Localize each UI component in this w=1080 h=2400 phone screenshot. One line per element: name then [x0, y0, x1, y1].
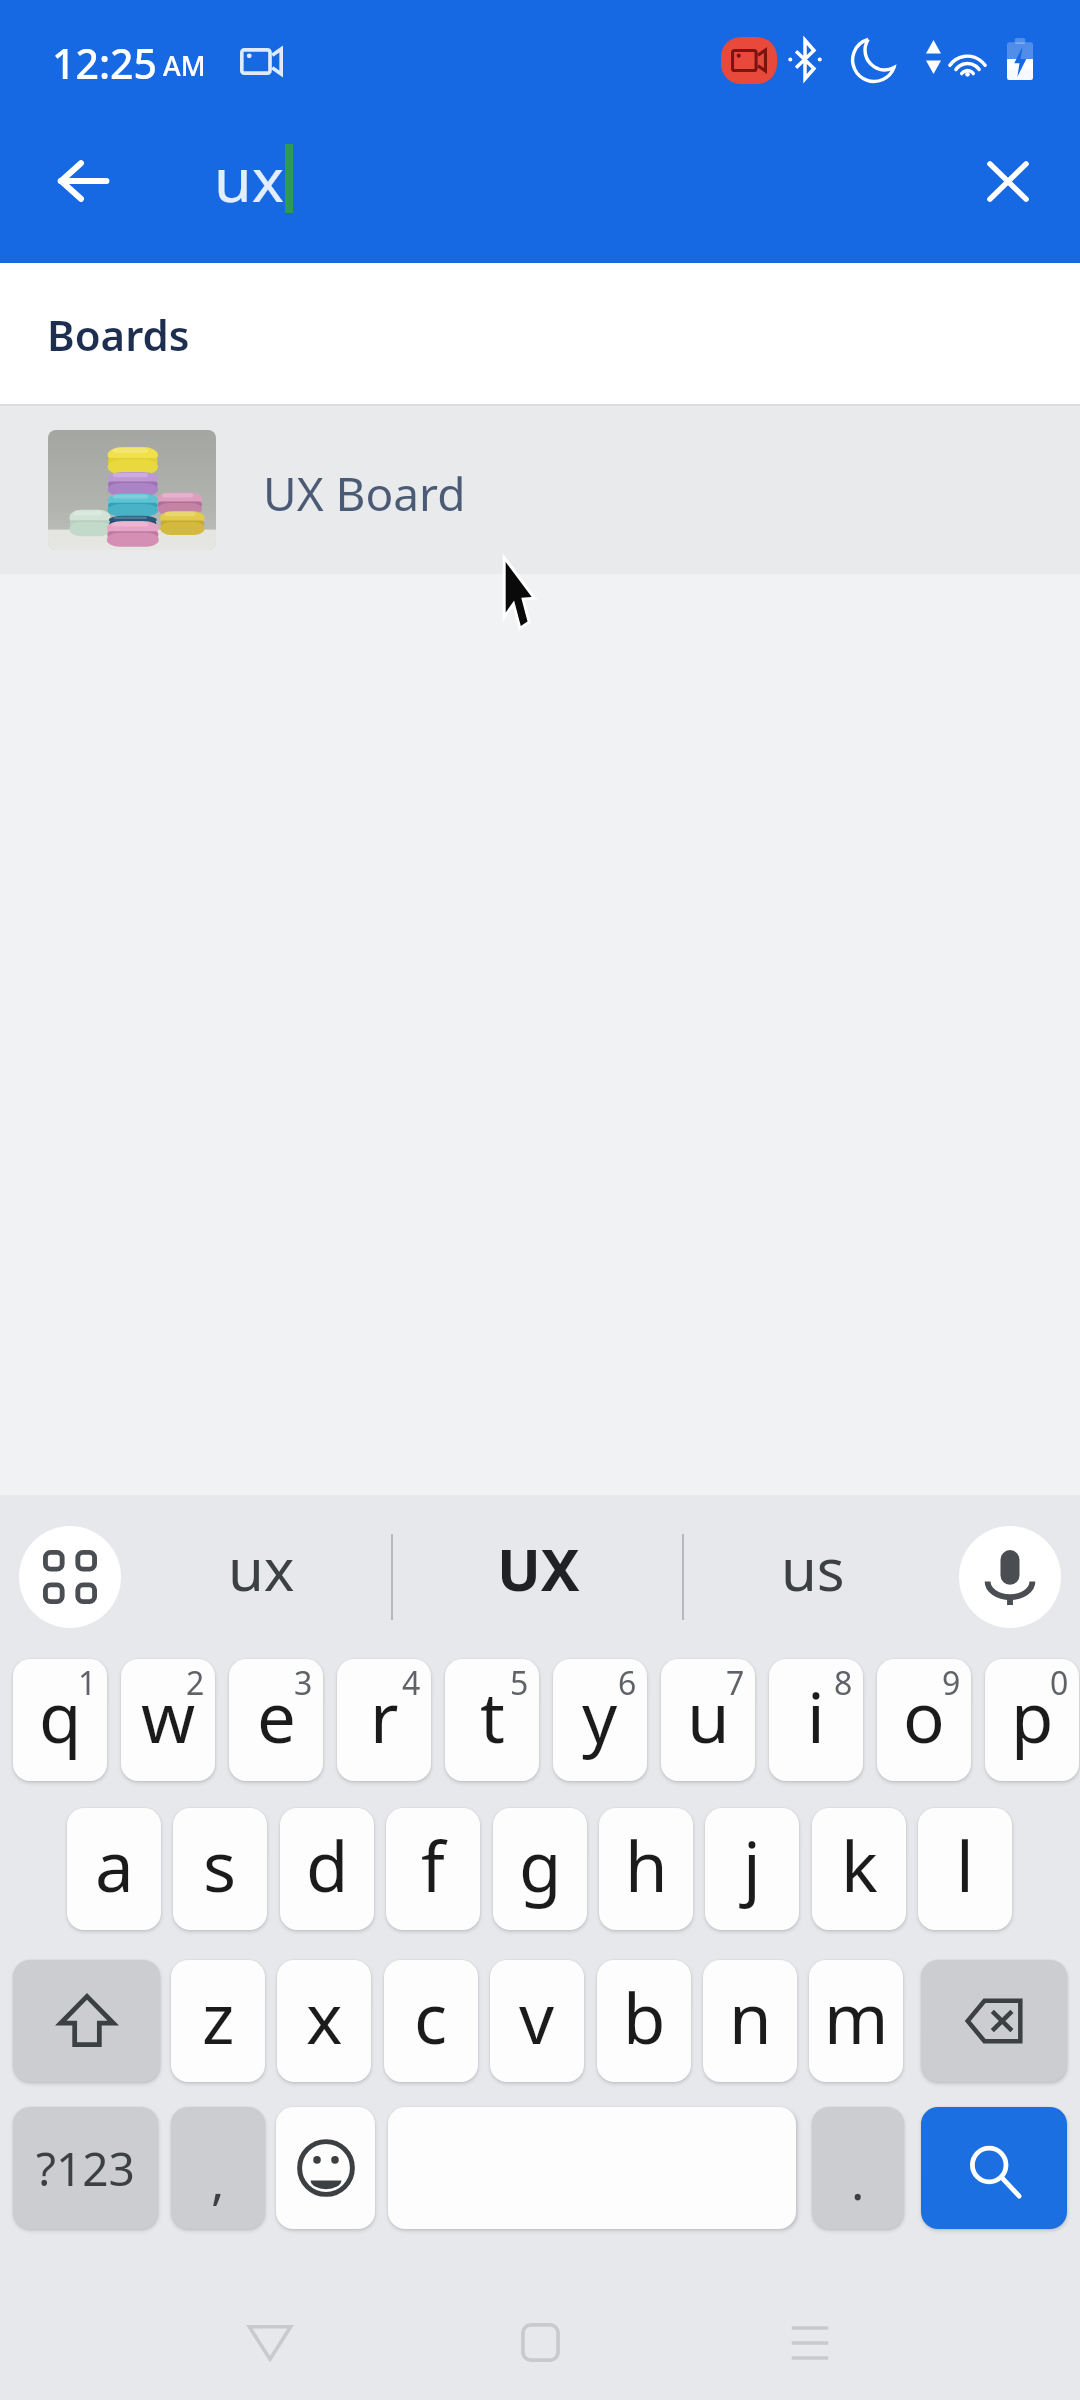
staticText: 8 — [834, 1661, 853, 1705]
button[interactable]: Back — [180, 2280, 360, 2400]
button[interactable]: 2 — [121, 1659, 215, 1781]
staticText: u — [687, 1669, 730, 1763]
staticText: j — [743, 1818, 761, 1912]
button[interactable]: , — [171, 2107, 265, 2229]
staticText: y — [582, 1669, 618, 1763]
staticText: 12:25 — [52, 35, 157, 91]
staticText: t — [480, 1669, 505, 1763]
button[interactable]: ?123 — [13, 2107, 158, 2229]
staticText: 1 — [78, 1661, 97, 1705]
staticText: i — [807, 1669, 825, 1763]
staticText: w — [141, 1669, 196, 1763]
staticText: c — [414, 1970, 448, 2064]
button[interactable]: a — [67, 1808, 161, 1930]
staticText: 5 — [510, 1661, 529, 1705]
button[interactable]: f — [386, 1808, 480, 1930]
staticText: UX — [497, 1529, 580, 1608]
button[interactable]: Search — [921, 2107, 1067, 2229]
staticText: 7 — [726, 1661, 745, 1705]
staticText: 4 — [402, 1661, 421, 1705]
staticText: l — [956, 1818, 974, 1912]
staticText: Boards — [47, 306, 190, 363]
staticText: v — [519, 1970, 555, 2064]
staticText: r — [370, 1669, 399, 1763]
button[interactable]: Clear search — [953, 126, 1063, 236]
staticText: o — [903, 1669, 945, 1763]
button[interactable]: 5 — [445, 1659, 539, 1781]
button[interactable]: 6 — [553, 1659, 647, 1781]
staticText: UX Board — [263, 462, 466, 525]
button[interactable]: 3 — [229, 1659, 323, 1781]
button[interactable]: us — [685, 1495, 941, 1659]
staticText: us — [781, 1529, 845, 1608]
button[interactable]: n — [703, 1960, 797, 2082]
button[interactable]: g — [493, 1808, 587, 1930]
button[interactable]: m — [809, 1960, 903, 2082]
staticText: 9 — [942, 1661, 961, 1705]
staticText: 6 — [618, 1661, 637, 1705]
staticText: m — [824, 1970, 889, 2064]
staticText: g — [519, 1818, 562, 1912]
button[interactable]: Voice input — [959, 1526, 1061, 1628]
staticText: 0 — [1050, 1661, 1069, 1705]
button[interactable]: Recent apps — [720, 2280, 900, 2400]
button[interactable]: Backspace — [921, 1960, 1067, 2082]
button[interactable]: 7 — [661, 1659, 755, 1781]
button[interactable]: 8 — [769, 1659, 863, 1781]
button[interactable]: s — [173, 1808, 267, 1930]
button[interactable]: 9 — [877, 1659, 971, 1781]
staticText: q — [39, 1669, 82, 1763]
button[interactable]: v — [490, 1960, 584, 2082]
button[interactable]: l — [918, 1808, 1012, 1930]
button[interactable]: ux — [130, 1495, 392, 1659]
staticText: , — [211, 2147, 225, 2215]
staticText: z — [202, 1970, 235, 2064]
button[interactable]: 1 — [13, 1659, 107, 1781]
staticText: h — [625, 1818, 668, 1912]
staticText: s — [203, 1818, 237, 1912]
button[interactable]: 4 — [337, 1659, 431, 1781]
button[interactable]: x — [277, 1960, 371, 2082]
button[interactable]: Shift — [13, 1960, 160, 2082]
staticText: ux — [228, 1529, 295, 1608]
staticText: n — [729, 1970, 772, 2064]
staticText: a — [95, 1818, 134, 1912]
staticText: e — [257, 1669, 296, 1763]
button[interactable]: d — [280, 1808, 374, 1930]
button[interactable]: b — [597, 1960, 691, 2082]
button[interactable]: h — [599, 1808, 693, 1930]
staticText: 2 — [186, 1661, 205, 1705]
button[interactable]: UX — [394, 1495, 682, 1659]
staticText: ?123 — [36, 2137, 135, 2200]
button[interactable]: k — [812, 1808, 906, 1930]
staticText: ux — [214, 137, 284, 220]
staticText: p — [1011, 1669, 1054, 1763]
button[interactable]: Back — [28, 126, 138, 236]
staticText: . — [851, 2147, 865, 2215]
button[interactable]: j — [705, 1808, 799, 1930]
button[interactable]: 0 — [985, 1659, 1079, 1781]
button[interactable]: c — [384, 1960, 478, 2082]
staticText: b — [623, 1970, 666, 2064]
button[interactable]: Emoji — [276, 2107, 375, 2229]
staticText: AM — [163, 47, 206, 84]
staticText: d — [306, 1818, 349, 1912]
button[interactable]: UX Board — [0, 406, 1080, 574]
staticText: 3 — [294, 1661, 313, 1705]
button[interactable]: Keyboard toolbar — [19, 1526, 121, 1628]
staticText: x — [306, 1970, 343, 2064]
button[interactable]: . — [812, 2107, 904, 2229]
staticText: f — [421, 1818, 445, 1912]
button[interactable]: z — [171, 1960, 265, 2082]
staticText: k — [841, 1818, 878, 1912]
button[interactable]: Home — [450, 2280, 630, 2400]
